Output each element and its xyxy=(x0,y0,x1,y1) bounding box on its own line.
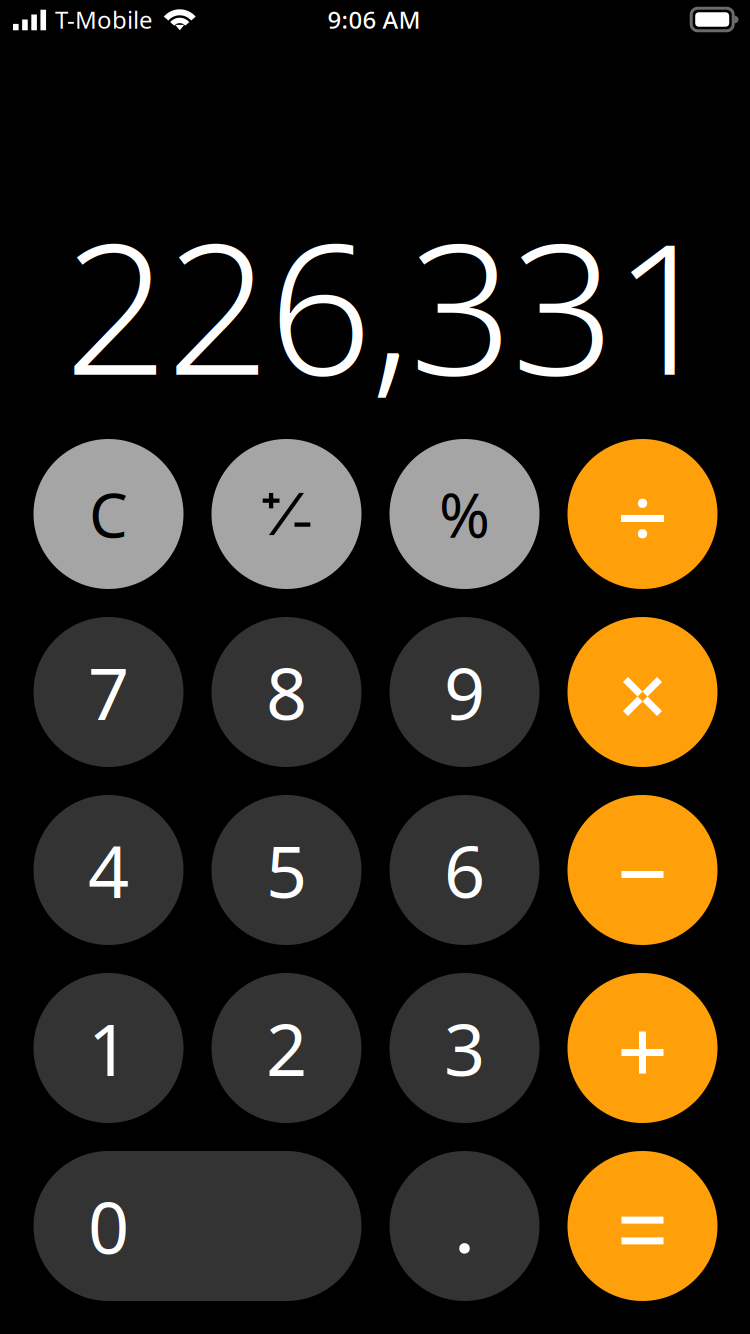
staticText: T-Mobile xyxy=(55,4,153,35)
button[interactable]: Plus Minus xyxy=(211,439,361,589)
staticText: 9:06 AM xyxy=(327,4,420,35)
staticText: % xyxy=(439,473,490,555)
button[interactable]: 3 xyxy=(389,973,539,1123)
button[interactable]: 2 xyxy=(211,973,361,1123)
button[interactable]: 0 xyxy=(33,1151,361,1301)
staticText: 6 xyxy=(444,822,485,918)
button[interactable]: Subtract xyxy=(567,795,717,945)
staticText: 1 xyxy=(88,1000,129,1096)
button[interactable]: 6 xyxy=(389,795,539,945)
staticText: 0 xyxy=(88,1178,129,1274)
button[interactable]: 9 xyxy=(389,617,539,767)
button[interactable]: Clear xyxy=(33,439,183,589)
button[interactable]: 5 xyxy=(211,795,361,945)
staticText: 7 xyxy=(88,644,129,740)
button[interactable]: 1 xyxy=(33,973,183,1123)
button[interactable]: Divide xyxy=(567,439,717,589)
button[interactable]: 4 xyxy=(33,795,183,945)
staticText: 2 xyxy=(266,1000,307,1096)
staticText: 5 xyxy=(266,822,307,918)
staticText: C xyxy=(89,473,128,555)
button[interactable]: Equals xyxy=(567,1151,717,1301)
button[interactable]: Decimal Point xyxy=(389,1151,539,1301)
staticText: 9 xyxy=(444,644,485,740)
staticText: 8 xyxy=(266,644,307,740)
button[interactable]: 8 xyxy=(211,617,361,767)
staticText: 226,331 xyxy=(64,184,717,425)
button[interactable]: Percent xyxy=(389,439,539,589)
button[interactable]: Multiply xyxy=(567,617,717,767)
button[interactable]: Add xyxy=(567,973,717,1123)
staticText: 4 xyxy=(88,822,129,918)
staticText: 3 xyxy=(444,1000,485,1096)
button[interactable]: 7 xyxy=(33,617,183,767)
